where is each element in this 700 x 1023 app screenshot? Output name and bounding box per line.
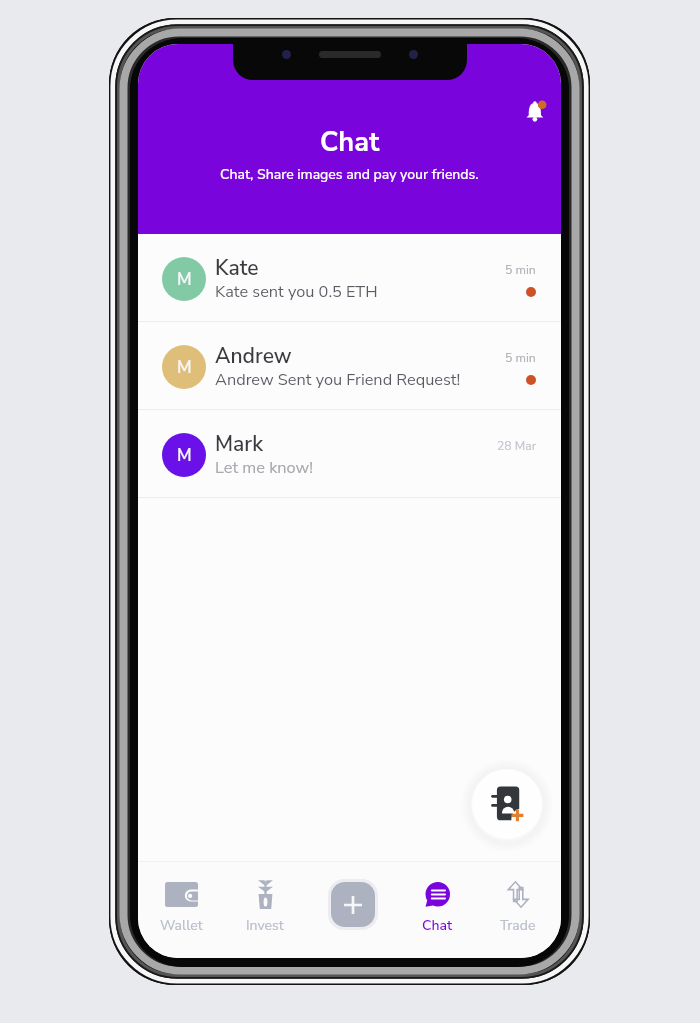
staticText: 28 Mar [497,438,536,455]
staticText: Chat, Share images and pay your friends. [220,165,479,184]
staticText: Invest [246,916,284,935]
button[interactable]: Notifications [518,94,554,130]
staticText: Chat [320,124,380,161]
staticText: 5 min [505,262,536,279]
staticText: M [177,268,192,291]
button[interactable]: Add contact [472,769,542,839]
button[interactable]: Trade [482,861,554,958]
staticText: Andrew Sent you Friend Request! [215,369,461,391]
button[interactable]: M [138,322,561,410]
button[interactable]: M [138,234,561,322]
staticText: M [177,356,192,379]
staticText: Kate sent you 0.5 ETH [215,281,378,303]
staticText: Wallet [160,916,203,935]
staticText: Andrew [215,342,292,371]
staticText: Kate [215,254,259,283]
button[interactable]: Invest [229,861,301,958]
staticText: 5 min [505,350,536,367]
staticText: Let me know! [215,457,313,479]
staticText: Mark [215,430,264,459]
button[interactable]: Chat [401,861,473,958]
button[interactable]: Add [331,882,375,927]
staticText: Chat [422,916,453,935]
button[interactable]: Wallet [145,861,217,958]
staticText: M [177,444,192,467]
staticText: Trade [500,916,536,935]
button[interactable]: M [138,410,561,498]
